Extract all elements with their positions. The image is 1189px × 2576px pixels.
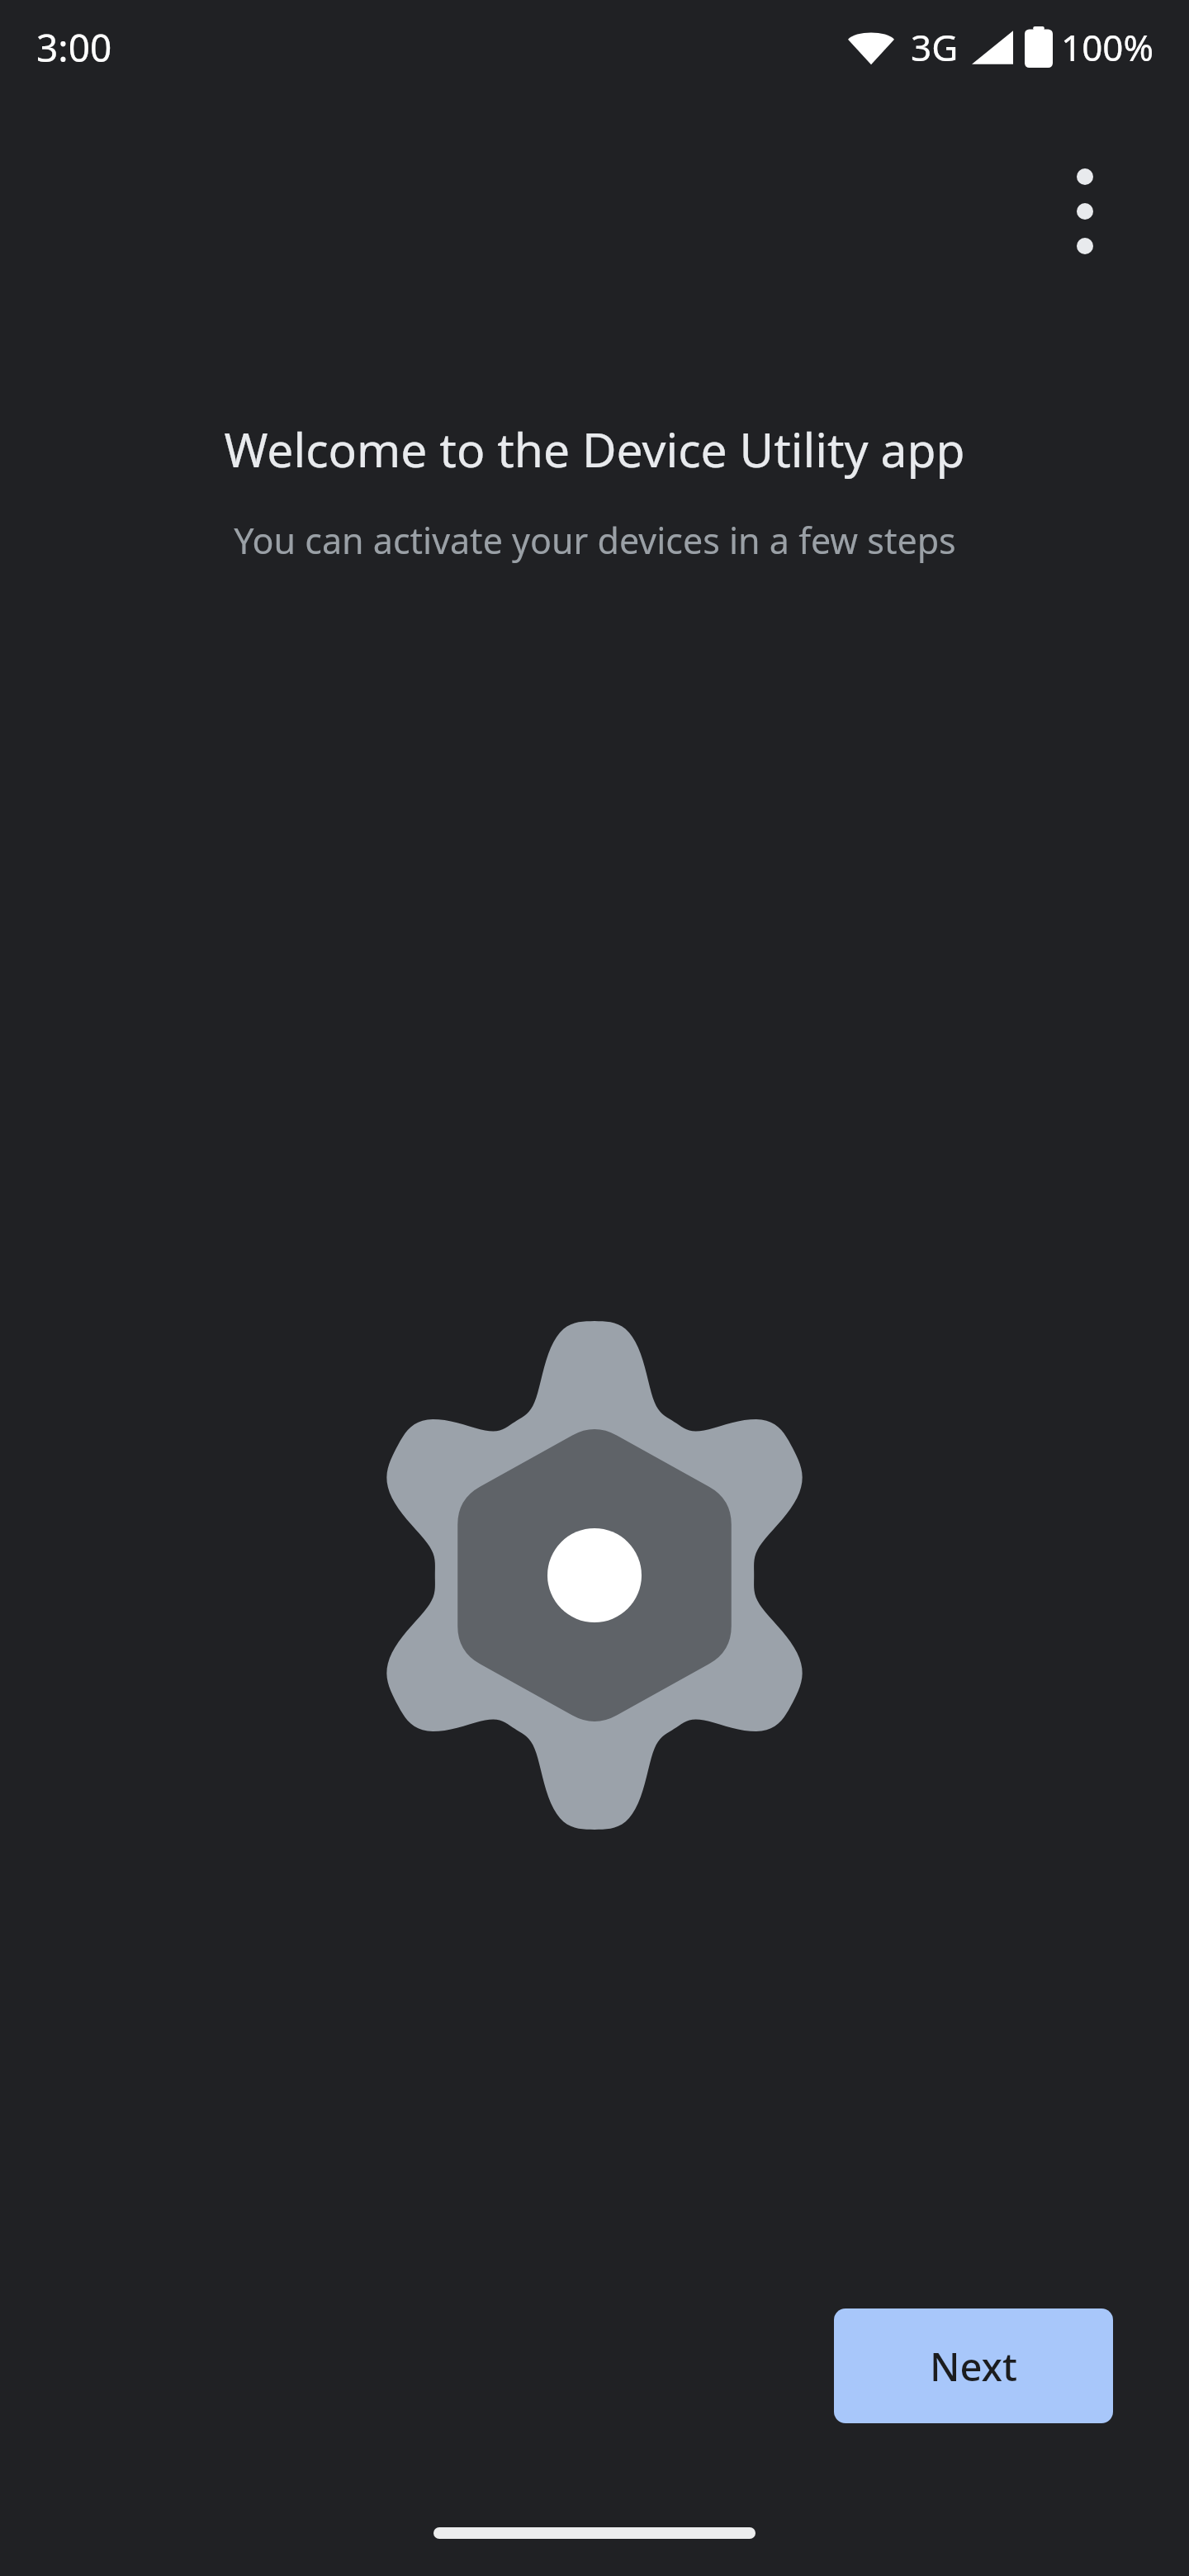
- button[interactable]: More options: [1027, 154, 1143, 269]
- staticText: 100%: [1061, 22, 1154, 72]
- staticText: 3G: [911, 22, 959, 72]
- staticText: 3:00: [36, 21, 112, 73]
- staticText: You can activate your devices in a few s…: [234, 516, 956, 565]
- button[interactable]: Next: [834, 2308, 1113, 2423]
- staticText: Next: [930, 2340, 1018, 2393]
- staticText: Welcome to the Device Utility app: [224, 417, 965, 481]
